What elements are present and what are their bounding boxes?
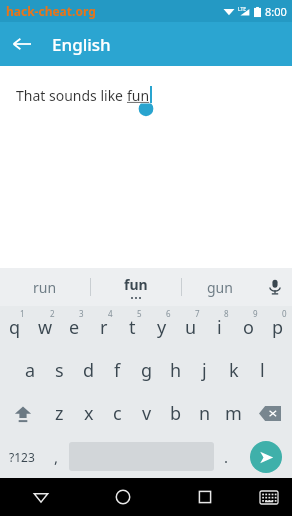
staticText: w: [38, 315, 53, 340]
staticText: 1: [20, 308, 25, 319]
button[interactable]: Recents: [164, 478, 246, 516]
staticText: hack-cheat.org: [6, 3, 96, 19]
button[interactable]: w: [30, 306, 60, 349]
staticText: ,: [54, 447, 59, 467]
button[interactable]: ?123: [0, 435, 44, 478]
staticText: c: [113, 401, 122, 426]
button[interactable]: h: [161, 349, 190, 392]
staticText: r: [100, 315, 108, 340]
staticText: i: [217, 315, 222, 340]
staticText: h: [170, 358, 182, 383]
staticText: fun: [124, 275, 148, 294]
button[interactable]: e: [60, 306, 89, 349]
staticText: 9: [253, 308, 258, 319]
button[interactable]: u: [176, 306, 205, 349]
staticText: o: [243, 315, 254, 340]
staticText: n: [199, 401, 211, 426]
button[interactable]: l: [248, 349, 277, 392]
button[interactable]: q: [0, 306, 30, 349]
staticText: gun: [207, 278, 233, 297]
staticText: 2: [50, 308, 55, 319]
button[interactable]: p: [263, 306, 292, 349]
button[interactable]: a: [16, 349, 45, 392]
button[interactable]: c: [103, 392, 132, 435]
button[interactable]: o: [234, 306, 263, 349]
staticText: ?123: [9, 449, 35, 465]
staticText: 6: [166, 308, 171, 319]
button[interactable]: d: [74, 349, 103, 392]
staticText: g: [141, 358, 153, 383]
staticText: v: [142, 401, 152, 426]
button[interactable]: Hide keyboard: [0, 478, 82, 516]
button[interactable]: i: [205, 306, 234, 349]
button[interactable]: fun: [91, 268, 181, 306]
button[interactable]: Voice input: [258, 268, 292, 306]
button[interactable]: gun: [182, 268, 258, 306]
staticText: a: [25, 358, 36, 383]
staticText: l: [260, 358, 265, 383]
staticText: d: [83, 358, 95, 383]
staticText: k: [229, 358, 239, 383]
staticText: 7: [195, 308, 200, 319]
button[interactable]: Shift: [0, 392, 45, 435]
staticText: b: [170, 401, 182, 426]
staticText: 4: [108, 308, 113, 319]
staticText: s: [55, 358, 64, 383]
button[interactable]: run: [0, 268, 90, 306]
button[interactable]: z: [45, 392, 74, 435]
button[interactable]: Backspace: [248, 392, 292, 435]
staticText: That sounds like: [16, 86, 127, 105]
button[interactable]: f: [103, 349, 132, 392]
staticText: f: [114, 358, 121, 383]
staticText: .: [224, 447, 229, 467]
staticText: u: [185, 315, 197, 340]
button[interactable]: t: [118, 306, 147, 349]
button[interactable]: s: [45, 349, 74, 392]
button[interactable]: x: [74, 392, 103, 435]
button[interactable]: k: [219, 349, 248, 392]
staticText: j: [202, 358, 207, 383]
button[interactable]: y: [147, 306, 176, 349]
button[interactable]: n: [190, 392, 219, 435]
staticText: 8:00: [265, 4, 287, 19]
staticText: fun: [127, 86, 150, 105]
staticText: run: [33, 278, 57, 297]
staticText: 3: [79, 308, 84, 319]
button[interactable]: Switch keyboard: [246, 478, 292, 516]
staticText: q: [9, 315, 21, 340]
button[interactable]: r: [89, 306, 118, 349]
staticText: e: [69, 315, 80, 340]
button[interactable]: g: [132, 349, 161, 392]
button[interactable]: Back: [0, 22, 44, 66]
staticText: m: [225, 401, 242, 426]
staticText: 8: [224, 308, 229, 319]
button[interactable]: ,: [44, 435, 69, 478]
button[interactable]: b: [161, 392, 190, 435]
staticText: y: [157, 315, 167, 340]
staticText: t: [129, 315, 136, 340]
button[interactable]: Home: [82, 478, 164, 516]
staticText: p: [272, 315, 284, 340]
staticText: z: [55, 401, 64, 426]
button[interactable]: j: [190, 349, 219, 392]
staticText: x: [84, 401, 94, 426]
staticText: 0: [282, 308, 287, 319]
staticText: LTE: [238, 6, 247, 13]
staticText: English: [52, 33, 111, 56]
button[interactable]: Send: [239, 435, 292, 478]
button[interactable]: m: [219, 392, 248, 435]
staticText: 5: [137, 308, 142, 319]
button[interactable]: .: [214, 435, 239, 478]
button[interactable]: v: [132, 392, 161, 435]
